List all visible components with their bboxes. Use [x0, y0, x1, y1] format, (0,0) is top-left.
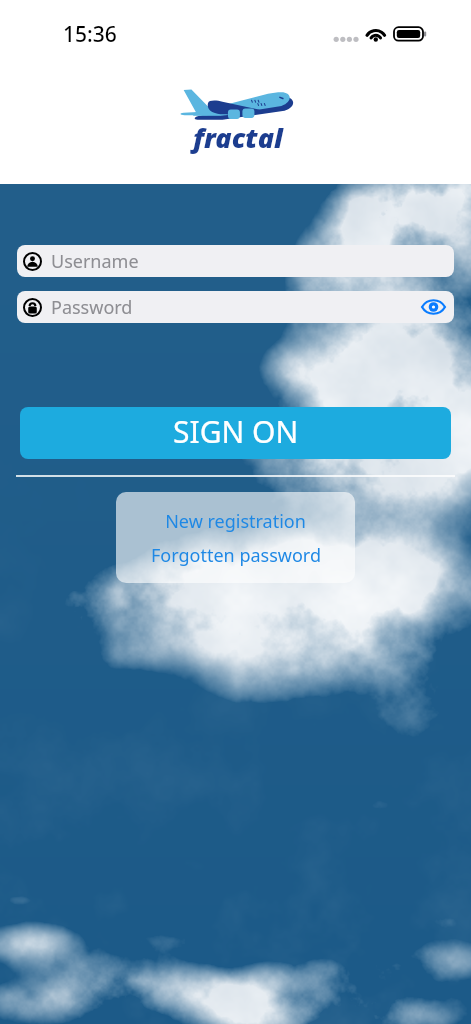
button[interactable]: Forgotten password	[116, 543, 355, 567]
button[interactable]: Password	[17, 291, 454, 323]
button[interactable]: New registration	[116, 509, 355, 533]
staticText: SIGN ON	[173, 411, 299, 452]
button[interactable]: Show password	[418, 292, 448, 322]
staticText: 15:36	[63, 20, 117, 49]
staticText: Username	[51, 249, 139, 274]
button[interactable]: Username	[17, 245, 454, 277]
staticText: Password	[51, 295, 133, 320]
staticText: fractal	[193, 119, 283, 156]
staticText: Forgotten password	[151, 543, 321, 567]
staticText: New registration	[165, 509, 306, 533]
button[interactable]: SIGN ON	[20, 407, 451, 459]
